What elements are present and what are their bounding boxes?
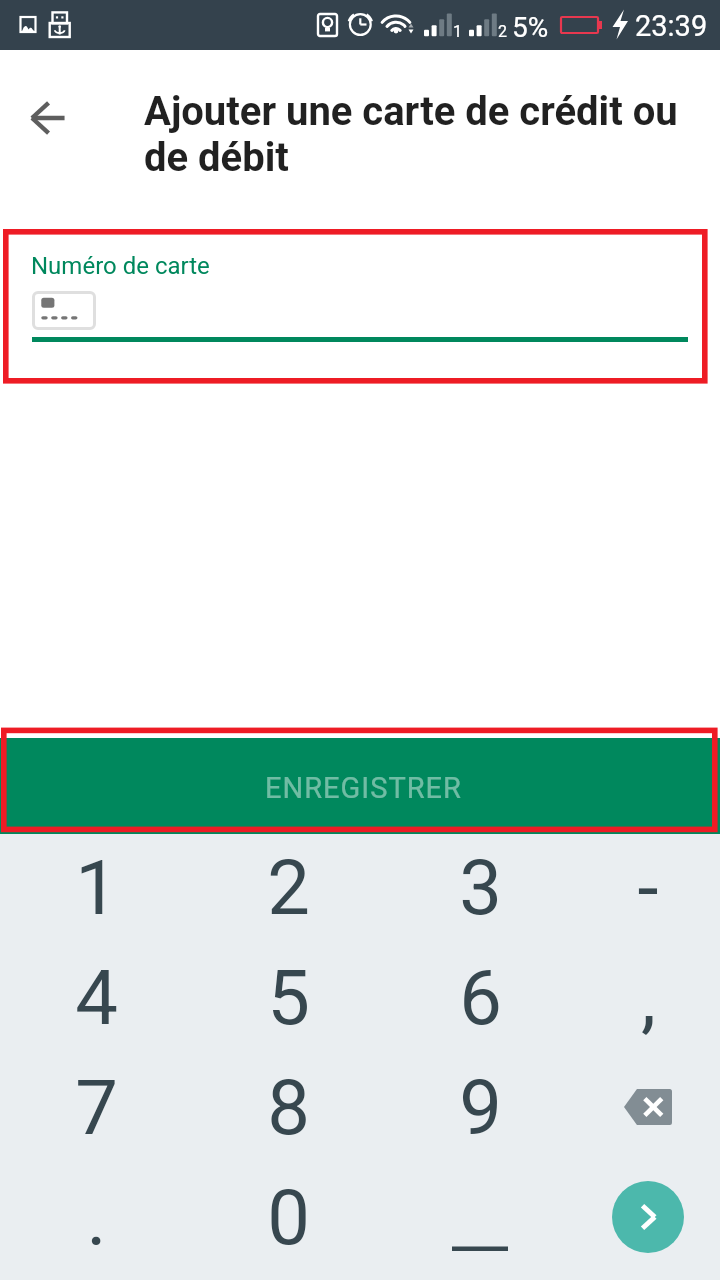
button[interactable]: ENREGISTRER [0, 738, 720, 834]
staticText: - [637, 843, 659, 932]
staticText: 6 [459, 953, 502, 1042]
button[interactable]: , [576, 942, 720, 1052]
staticText: 0 [267, 1173, 310, 1262]
button[interactable]: 2 [192, 832, 384, 942]
button[interactable]: 5 [192, 942, 384, 1052]
staticText: 1 [75, 843, 118, 932]
other: Backspace [624, 1089, 672, 1125]
staticText: 1 [453, 22, 462, 41]
button[interactable]: Backspace [576, 1052, 720, 1162]
button[interactable]: . [0, 1162, 192, 1272]
button[interactable]: 3 [384, 832, 576, 942]
staticText: 5 [267, 953, 310, 1042]
button[interactable]: 9 [384, 1052, 576, 1162]
button[interactable]: Next [576, 1162, 720, 1272]
staticText: 3 [459, 843, 502, 932]
button[interactable]: 8 [192, 1052, 384, 1162]
button[interactable]: 7 [0, 1052, 192, 1162]
staticText: Ajouter une carte de crédit ou de débit [144, 88, 689, 181]
staticText: . [86, 1173, 107, 1262]
button[interactable]: 0 [192, 1162, 384, 1272]
button[interactable]: - [576, 832, 720, 942]
staticText: 4 [75, 953, 118, 1042]
button[interactable] [384, 1162, 576, 1272]
button[interactable]: 1 [0, 832, 192, 942]
staticText: 5% [512, 11, 549, 44]
staticText: Numéro de carte [31, 252, 210, 280]
button[interactable]: 6 [384, 942, 576, 1052]
staticText: 7 [75, 1063, 118, 1152]
staticText: , [641, 953, 656, 1042]
button[interactable]: 4 [0, 942, 192, 1052]
staticText: ENREGISTRER [265, 771, 462, 805]
staticText: 8 [267, 1063, 310, 1152]
staticText: 23:39 [635, 9, 708, 43]
staticText: 2 [267, 843, 310, 932]
button[interactable]: Back [16, 86, 80, 150]
other: Next [612, 1181, 684, 1253]
staticText: 9 [459, 1063, 502, 1152]
staticText: 2 [498, 22, 507, 41]
